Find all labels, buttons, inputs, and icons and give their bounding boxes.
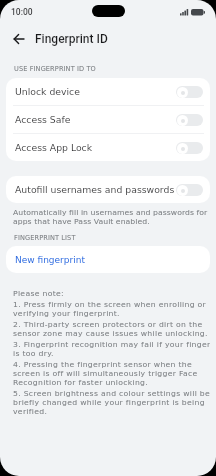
staticText: Unlock device — [15, 86, 80, 97]
button[interactable]: Access Safe — [6, 106, 210, 133]
staticText: New fingerprint — [15, 255, 85, 265]
staticText: Fingerprint ID — [35, 32, 108, 46]
button[interactable]: New fingerprint — [6, 246, 210, 273]
staticText: 10:00 — [11, 7, 33, 17]
staticText: Access Safe — [15, 114, 71, 125]
staticText: Automatically fill in usernames and pass… — [13, 208, 208, 226]
staticText: 1. Press firmly on the screen when enrol… — [13, 300, 207, 318]
staticText: 2. Third-party screen protectors or dirt… — [13, 320, 208, 338]
staticText: USE FINGERPRINT ID TO — [14, 65, 96, 73]
staticText: Access App Lock — [15, 142, 93, 153]
button[interactable]: Access App Lock — [6, 134, 210, 161]
staticText: Autofill usernames and passwords — [15, 184, 175, 195]
button[interactable]: Unlock device — [6, 78, 210, 105]
staticText: Please note: — [13, 289, 64, 298]
button[interactable]: Autofill usernames and passwords — [6, 176, 210, 203]
staticText: 3. Fingerprint recognition may fail if y… — [13, 340, 210, 358]
staticText: 5. Screen brightness and colour settings… — [13, 389, 210, 416]
staticText: 4. Pressing the fingerprint sensor when … — [13, 360, 198, 387]
staticText: FINGERPRINT LIST — [14, 234, 76, 242]
button[interactable] — [13, 33, 25, 45]
